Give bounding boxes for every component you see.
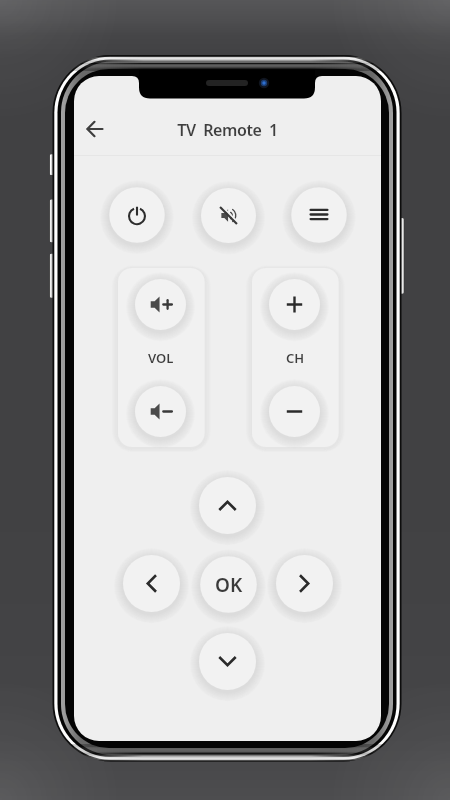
button[interactable]: Volume down — [121, 372, 200, 451]
button[interactable]: Back — [75, 109, 115, 149]
button[interactable]: Up — [185, 463, 270, 548]
button[interactable]: Channel up — [255, 265, 334, 344]
button[interactable]: Left — [109, 541, 194, 626]
staticText: VOL — [148, 349, 174, 367]
button[interactable]: Power — [95, 173, 179, 257]
button[interactable]: Menu — [277, 173, 361, 257]
button[interactable]: Channel down — [255, 372, 334, 451]
button[interactable]: Volume up — [121, 265, 200, 344]
staticText: OK — [215, 572, 243, 598]
button[interactable]: Down — [185, 619, 270, 704]
staticText: TV Remote 1 — [74, 119, 381, 141]
button[interactable]: OK — [186, 542, 271, 627]
button[interactable]: Mute — [187, 174, 270, 257]
button[interactable]: Right — [262, 541, 347, 626]
staticText: CH — [286, 349, 305, 367]
